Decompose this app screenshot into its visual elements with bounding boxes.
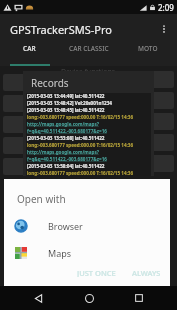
staticText: [2015-03-03 13:53:08] lat:40.511422 — [27, 135, 105, 141]
staticText: f=q&q=40.511422,-003.680177&z=16 — [27, 128, 107, 134]
button[interactable]: Maps — [4, 241, 170, 265]
staticText: [2015-03-03 13:48:42] Vel:20s001n1234 — [27, 100, 112, 106]
button[interactable]: CAR CLASSIC — [59, 44, 118, 53]
staticText: f=q&q=40.511422,-003.680177&z=16 — [27, 156, 107, 162]
button[interactable]: MOTO — [118, 44, 177, 53]
staticText: MOTO — [138, 44, 158, 53]
staticText: GPSTrackerSMS-Pro — [10, 22, 112, 37]
staticText: Browser — [48, 220, 83, 232]
button[interactable]: Function — [150, 113, 174, 130]
staticText: ALWAYS — [132, 268, 161, 277]
staticText: [2015-03-03 13:44:49] lat:40.511422 — [27, 93, 105, 99]
button[interactable]: Browser — [4, 214, 170, 238]
staticText: long:-003.680177 speed:000.00 T:16/02/15… — [27, 142, 134, 148]
staticText: JUST ONCE — [77, 268, 116, 277]
staticText: Records — [31, 76, 69, 90]
staticText: http://maps.google.com/maps? — [27, 121, 99, 127]
button[interactable]: Back — [26, 286, 50, 310]
staticText: Maps — [48, 247, 72, 259]
button[interactable]: More options — [151, 16, 177, 42]
staticText: long:-003.680177 speed:000.00 T:16/02/15… — [27, 114, 134, 120]
staticText: 2:09 — [158, 2, 174, 13]
button[interactable]: Function — [150, 134, 174, 151]
button[interactable]: Function — [150, 155, 174, 172]
button[interactable]: Function — [150, 71, 174, 88]
button[interactable]: CAR — [0, 44, 59, 53]
staticText: [2015-03-03 13:48:45] lat:40.511422 — [27, 107, 105, 113]
staticText: CAR — [23, 44, 36, 53]
staticText: http://maps.google.com/maps? — [27, 149, 99, 155]
button[interactable]: Recents — [127, 286, 151, 310]
staticText: CAR CLASSIC — [69, 44, 109, 53]
staticText: Open with — [17, 192, 66, 206]
staticText: long:-003.680177 speed:000.00 T:16/02/15… — [27, 170, 134, 176]
staticText: [2015-03-03 13:58:04] lat:40.511422 — [27, 163, 105, 169]
button[interactable]: Home — [77, 286, 101, 310]
button[interactable]: Function — [150, 92, 174, 109]
staticText: Device functions — [61, 67, 116, 77]
button[interactable]: ALWAYS — [129, 265, 164, 280]
button[interactable]: JUST ONCE — [74, 265, 119, 280]
